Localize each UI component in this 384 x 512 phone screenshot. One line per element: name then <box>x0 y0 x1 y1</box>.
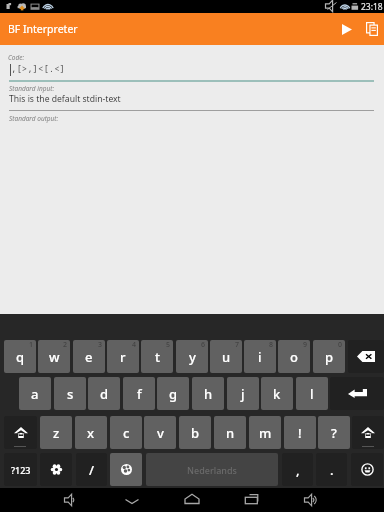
button[interactable]: j <box>227 377 259 410</box>
staticText: 4 <box>132 340 137 350</box>
button[interactable]: shift <box>352 416 384 449</box>
staticText: e <box>85 348 93 366</box>
button[interactable]: c <box>110 416 142 449</box>
button[interactable]: g <box>157 377 189 410</box>
staticText: c <box>123 424 130 442</box>
button[interactable]: Volume up <box>289 488 333 512</box>
staticText: o <box>290 348 298 366</box>
staticText: Standard input: <box>9 84 55 93</box>
staticText: w <box>49 348 60 366</box>
staticText: . <box>330 461 334 479</box>
staticText: i <box>258 348 262 366</box>
button[interactable]: globe <box>110 453 142 486</box>
staticText: x <box>87 424 95 442</box>
button[interactable]: ! <box>284 416 316 449</box>
button[interactable]: z <box>40 416 72 449</box>
staticText: d <box>100 385 109 403</box>
button[interactable]: m <box>249 416 281 449</box>
button[interactable]: backspace <box>348 340 384 373</box>
button[interactable]: Home <box>170 488 214 512</box>
button[interactable]: emoji <box>351 453 383 486</box>
button[interactable]: k <box>261 377 293 410</box>
button[interactable]: v <box>144 416 176 449</box>
staticText: 8 <box>269 340 274 350</box>
staticText: Standard output: <box>9 114 59 123</box>
button[interactable]: x <box>75 416 107 449</box>
button[interactable]: Hide keyboard <box>110 488 154 512</box>
staticText: Code: <box>8 53 25 62</box>
button[interactable]: r <box>107 340 139 373</box>
staticText: p <box>325 348 334 366</box>
staticText: ?123 <box>11 464 31 476</box>
button[interactable]: / <box>76 453 107 486</box>
button[interactable]: u <box>210 340 242 373</box>
button[interactable]: i <box>244 340 276 373</box>
staticText: 1 <box>29 340 34 350</box>
staticText: b <box>191 424 200 442</box>
staticText: Nederlands <box>187 464 237 476</box>
staticText: l <box>310 385 314 403</box>
staticText: k <box>273 385 281 403</box>
button[interactable]: b <box>179 416 211 449</box>
button[interactable]: n <box>214 416 246 449</box>
button[interactable]: ? <box>318 416 350 449</box>
staticText: ,[>,]<[.<] <box>11 62 66 74</box>
staticText: f <box>137 385 142 403</box>
staticText: n <box>226 424 235 442</box>
staticText: y <box>189 348 196 366</box>
staticText: v <box>157 424 164 442</box>
button[interactable]: p <box>313 340 345 373</box>
button[interactable]: l <box>296 377 328 410</box>
button[interactable]: o <box>278 340 310 373</box>
button[interactable]: t <box>141 340 173 373</box>
button[interactable]: h <box>192 377 224 410</box>
staticText: 5 <box>166 340 171 350</box>
staticText: 7 <box>235 340 240 350</box>
staticText: m <box>259 424 272 442</box>
button[interactable]: d <box>88 377 120 410</box>
staticText: t <box>155 348 160 366</box>
staticText: a <box>31 385 39 403</box>
staticText: 3 <box>98 340 103 350</box>
button[interactable]: Volume down <box>50 488 94 512</box>
button[interactable]: Recent apps <box>229 488 273 512</box>
staticText: 23:18 <box>361 1 383 13</box>
staticText: / <box>89 461 95 479</box>
staticText: s <box>67 385 74 403</box>
button[interactable]: shift <box>4 416 37 449</box>
staticText: This is the default stdin-text <box>9 93 121 105</box>
button[interactable]: enter <box>330 377 384 410</box>
staticText: 2 <box>63 340 68 350</box>
staticText: j <box>241 385 245 403</box>
staticText: 6 <box>201 340 206 350</box>
button[interactable]: w <box>38 340 70 373</box>
staticText: r <box>120 348 126 366</box>
staticText: q <box>16 348 25 366</box>
staticText: h <box>204 385 213 403</box>
button[interactable]: ?123 <box>4 453 37 486</box>
staticText: g <box>169 385 178 403</box>
button[interactable]: Copy <box>356 13 384 45</box>
staticText: ? <box>331 424 337 442</box>
button[interactable]: . <box>316 453 347 486</box>
button[interactable]: s <box>54 377 86 410</box>
button[interactable]: Run <box>331 13 363 45</box>
button[interactable]: a <box>19 377 51 410</box>
button[interactable]: Nederlands <box>146 453 278 486</box>
staticText: , <box>296 461 300 479</box>
staticText: 0 <box>338 340 343 350</box>
button[interactable]: , <box>282 453 313 486</box>
staticText: 9 <box>303 340 308 350</box>
button[interactable]: q <box>4 340 36 373</box>
button[interactable]: f <box>123 377 155 410</box>
button[interactable]: e <box>73 340 105 373</box>
staticText: ! <box>298 424 302 442</box>
button[interactable]: y <box>176 340 208 373</box>
staticText: u <box>222 348 231 366</box>
staticText: BF Interpreter <box>8 22 78 36</box>
button[interactable]: gear <box>40 453 72 486</box>
staticText: z <box>53 424 60 442</box>
